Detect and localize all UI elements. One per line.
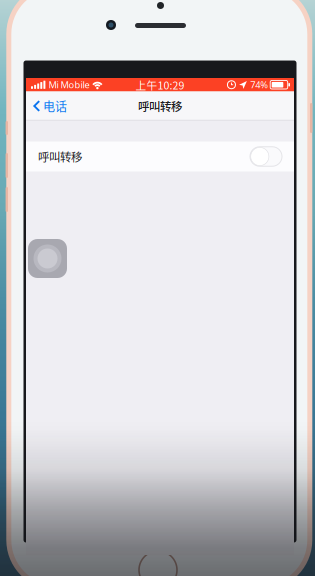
staticText: Mi Mobile — [48, 79, 89, 91]
staticText: 上午10:29 — [135, 77, 184, 92]
button[interactable]: AssistiveTouch — [28, 239, 67, 278]
staticText: 74% — [250, 79, 268, 91]
staticText: 电话 — [43, 97, 67, 115]
button[interactable]: 电话 — [26, 92, 67, 120]
staticText: 呼叫转移 — [138, 98, 182, 114]
button[interactable]: 呼叫转移 — [26, 141, 294, 171]
staticText: 呼叫转移 — [38, 148, 82, 165]
